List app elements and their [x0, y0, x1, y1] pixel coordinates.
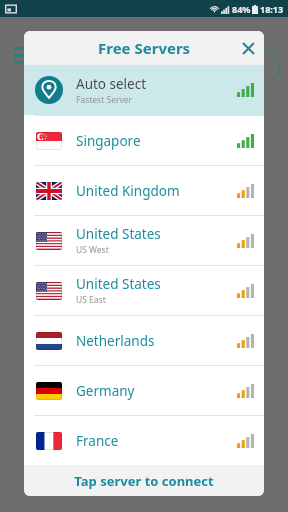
staticText: Singapore	[76, 132, 141, 150]
staticText: 18:13	[260, 3, 284, 15]
staticText: Free Servers	[98, 38, 191, 58]
staticText: Auto select	[76, 75, 147, 93]
staticText: Germany	[76, 382, 135, 400]
button[interactable]: Germany	[24, 366, 264, 415]
staticText: Netherlands	[76, 332, 155, 350]
button[interactable]: France	[24, 416, 264, 465]
button[interactable]: Tap server to connect	[24, 465, 264, 496]
staticText: 84%	[232, 3, 251, 15]
button[interactable]: Close	[232, 32, 264, 64]
button[interactable]: Netherlands	[24, 316, 264, 365]
button[interactable]: United Kingdom	[24, 166, 264, 215]
staticText: United Kingdom	[76, 182, 180, 200]
staticText: Tap server to connect	[74, 472, 214, 490]
staticText: Fastest Server	[76, 94, 133, 106]
button[interactable]: United States	[24, 266, 264, 315]
staticText: US East	[76, 294, 106, 306]
staticText: US West	[76, 244, 109, 256]
button[interactable]: United States	[24, 216, 264, 265]
staticText: United States	[76, 225, 161, 243]
staticText: United States	[76, 275, 161, 293]
button[interactable]: Singapore	[24, 116, 264, 165]
button[interactable]: Auto select	[24, 65, 264, 115]
staticText: France	[76, 432, 119, 450]
